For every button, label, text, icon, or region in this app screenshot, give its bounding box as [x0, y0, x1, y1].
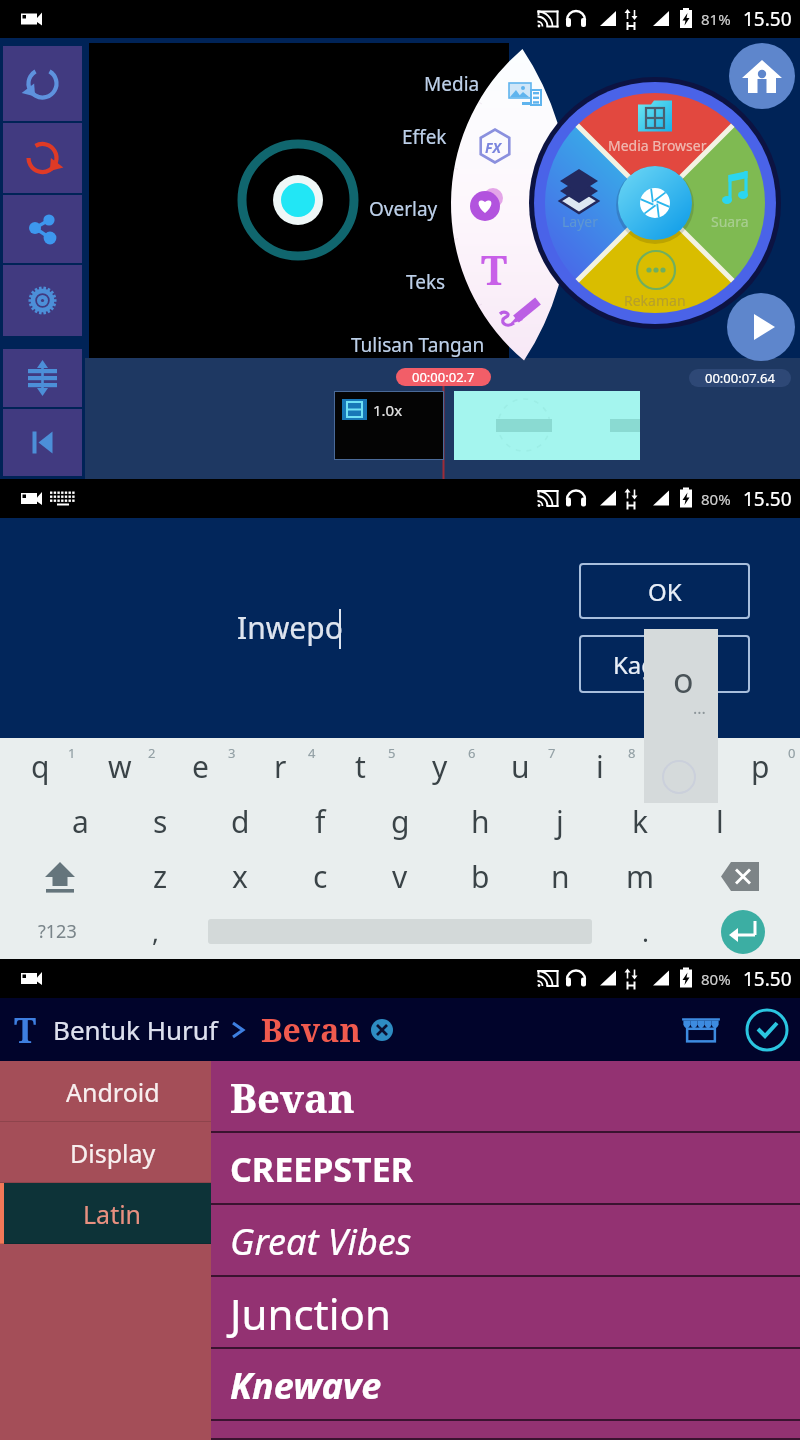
staticText: 5 — [388, 744, 396, 762]
button[interactable]: CREEPSTER — [211, 1133, 800, 1205]
button[interactable]: l — [680, 794, 760, 849]
staticText: CREEPSTER — [230, 1146, 414, 1192]
button[interactable]: Backspace — [680, 849, 800, 904]
button[interactable]: q — [0, 738, 80, 794]
button[interactable]: Enter — [686, 904, 800, 959]
button[interactable]: Home — [729, 43, 795, 109]
button[interactable]: x — [200, 849, 280, 904]
staticText: Junction — [230, 1285, 391, 1342]
button[interactable]: Font — [14, 1007, 37, 1053]
button[interactable]: i — [560, 738, 640, 794]
button[interactable]: f — [280, 794, 360, 849]
button[interactable]: d — [200, 794, 280, 849]
staticText: 6 — [468, 744, 476, 762]
staticText: Knewave — [230, 1361, 382, 1410]
button[interactable]: Play — [727, 293, 795, 361]
button[interactable]: ?123 — [0, 904, 114, 959]
staticText: 15.50 — [743, 486, 792, 512]
button[interactable]: Knewave — [211, 1349, 800, 1421]
staticText: Overlay — [369, 196, 438, 222]
button[interactable]: u — [480, 738, 560, 794]
button[interactable]: , — [114, 904, 196, 959]
staticText: Layer — [562, 212, 599, 231]
staticText: Teks — [406, 269, 446, 295]
button[interactable]: 1.0x — [334, 391, 444, 460]
button[interactable]: Skip to start — [3, 409, 82, 476]
staticText: 80% — [701, 489, 731, 509]
staticText: Bevan — [230, 1070, 355, 1124]
staticText: T — [481, 242, 508, 296]
button[interactable] — [211, 1421, 800, 1440]
button[interactable]: Android — [0, 1061, 211, 1122]
staticText: 80% — [701, 969, 731, 989]
button[interactable]: w — [80, 738, 160, 794]
button[interactable]: Junction — [211, 1277, 800, 1349]
staticText: Inwepo — [237, 607, 343, 648]
staticText: 7 — [548, 744, 556, 762]
staticText: 81% — [701, 9, 731, 29]
button[interactable]: h — [440, 794, 520, 849]
button[interactable]: o — [644, 629, 718, 803]
button[interactable]: Clear font — [371, 1019, 393, 1041]
staticText: a — [72, 801, 89, 842]
staticText: 3 — [228, 744, 236, 762]
button[interactable]: Store — [680, 1009, 722, 1051]
staticText: e — [192, 746, 209, 787]
staticText: n — [551, 856, 570, 897]
staticText: 1.0x — [373, 400, 403, 420]
button[interactable]: k — [600, 794, 680, 849]
button[interactable]: n — [520, 849, 600, 904]
button[interactable]: v — [360, 849, 440, 904]
button[interactable]: Redo — [3, 123, 82, 193]
button[interactable]: s — [120, 794, 200, 849]
button[interactable]: Latin — [0, 1183, 211, 1244]
button[interactable] — [454, 391, 640, 460]
button[interactable]: y — [400, 738, 480, 794]
button[interactable]: b — [440, 849, 520, 904]
staticText: FX — [485, 138, 502, 157]
staticText: Media — [424, 71, 480, 97]
button[interactable]: Confirm — [744, 1007, 790, 1053]
staticText: o — [673, 657, 694, 703]
button[interactable]: Display — [0, 1122, 211, 1183]
button[interactable]: Bevan — [211, 1061, 800, 1133]
staticText: Media Browser — [608, 136, 707, 155]
staticText: Tulisan Tangan — [351, 332, 485, 358]
staticText: T — [14, 1007, 37, 1053]
button[interactable]: z — [120, 849, 200, 904]
staticText: y — [432, 746, 448, 787]
staticText: Rekaman — [624, 291, 686, 310]
button[interactable]: p — [720, 738, 800, 794]
staticText: 00:00:07.64 — [705, 369, 775, 387]
staticText: ... — [693, 697, 706, 719]
button[interactable]: Expand — [3, 349, 82, 407]
button[interactable]: OK — [579, 563, 750, 619]
staticText: 4 — [308, 744, 316, 762]
button[interactable]: Space — [196, 904, 604, 959]
staticText: . — [642, 914, 649, 949]
button[interactable]: c — [280, 849, 360, 904]
staticText: 15.50 — [743, 6, 792, 32]
button[interactable]: Undo — [3, 46, 82, 121]
button[interactable]: Settings — [3, 265, 82, 336]
button[interactable]: g — [360, 794, 440, 849]
button[interactable]: j — [520, 794, 600, 849]
staticText: r — [274, 746, 287, 787]
button[interactable]: a — [40, 794, 120, 849]
staticText: i — [596, 746, 604, 787]
button[interactable]: . — [604, 904, 686, 959]
button[interactable]: Great Vibes — [211, 1205, 800, 1277]
button[interactable]: o — [640, 738, 720, 794]
staticText: d — [231, 801, 250, 842]
button[interactable]: Share — [3, 195, 82, 263]
button[interactable]: Shift — [0, 849, 120, 904]
staticText: Display — [70, 1136, 156, 1170]
button[interactable]: Kagalkan — [579, 635, 750, 693]
staticText: c — [313, 856, 328, 897]
staticText: k — [632, 801, 649, 842]
button[interactable]: r — [240, 738, 320, 794]
button[interactable]: t — [320, 738, 400, 794]
button[interactable]: m — [600, 849, 680, 904]
button[interactable]: e — [160, 738, 240, 794]
